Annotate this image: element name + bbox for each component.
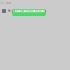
staticText: 9:41 AM: [0, 1, 10, 5]
staticText: Label text inside here ok: [12, 9, 46, 13]
